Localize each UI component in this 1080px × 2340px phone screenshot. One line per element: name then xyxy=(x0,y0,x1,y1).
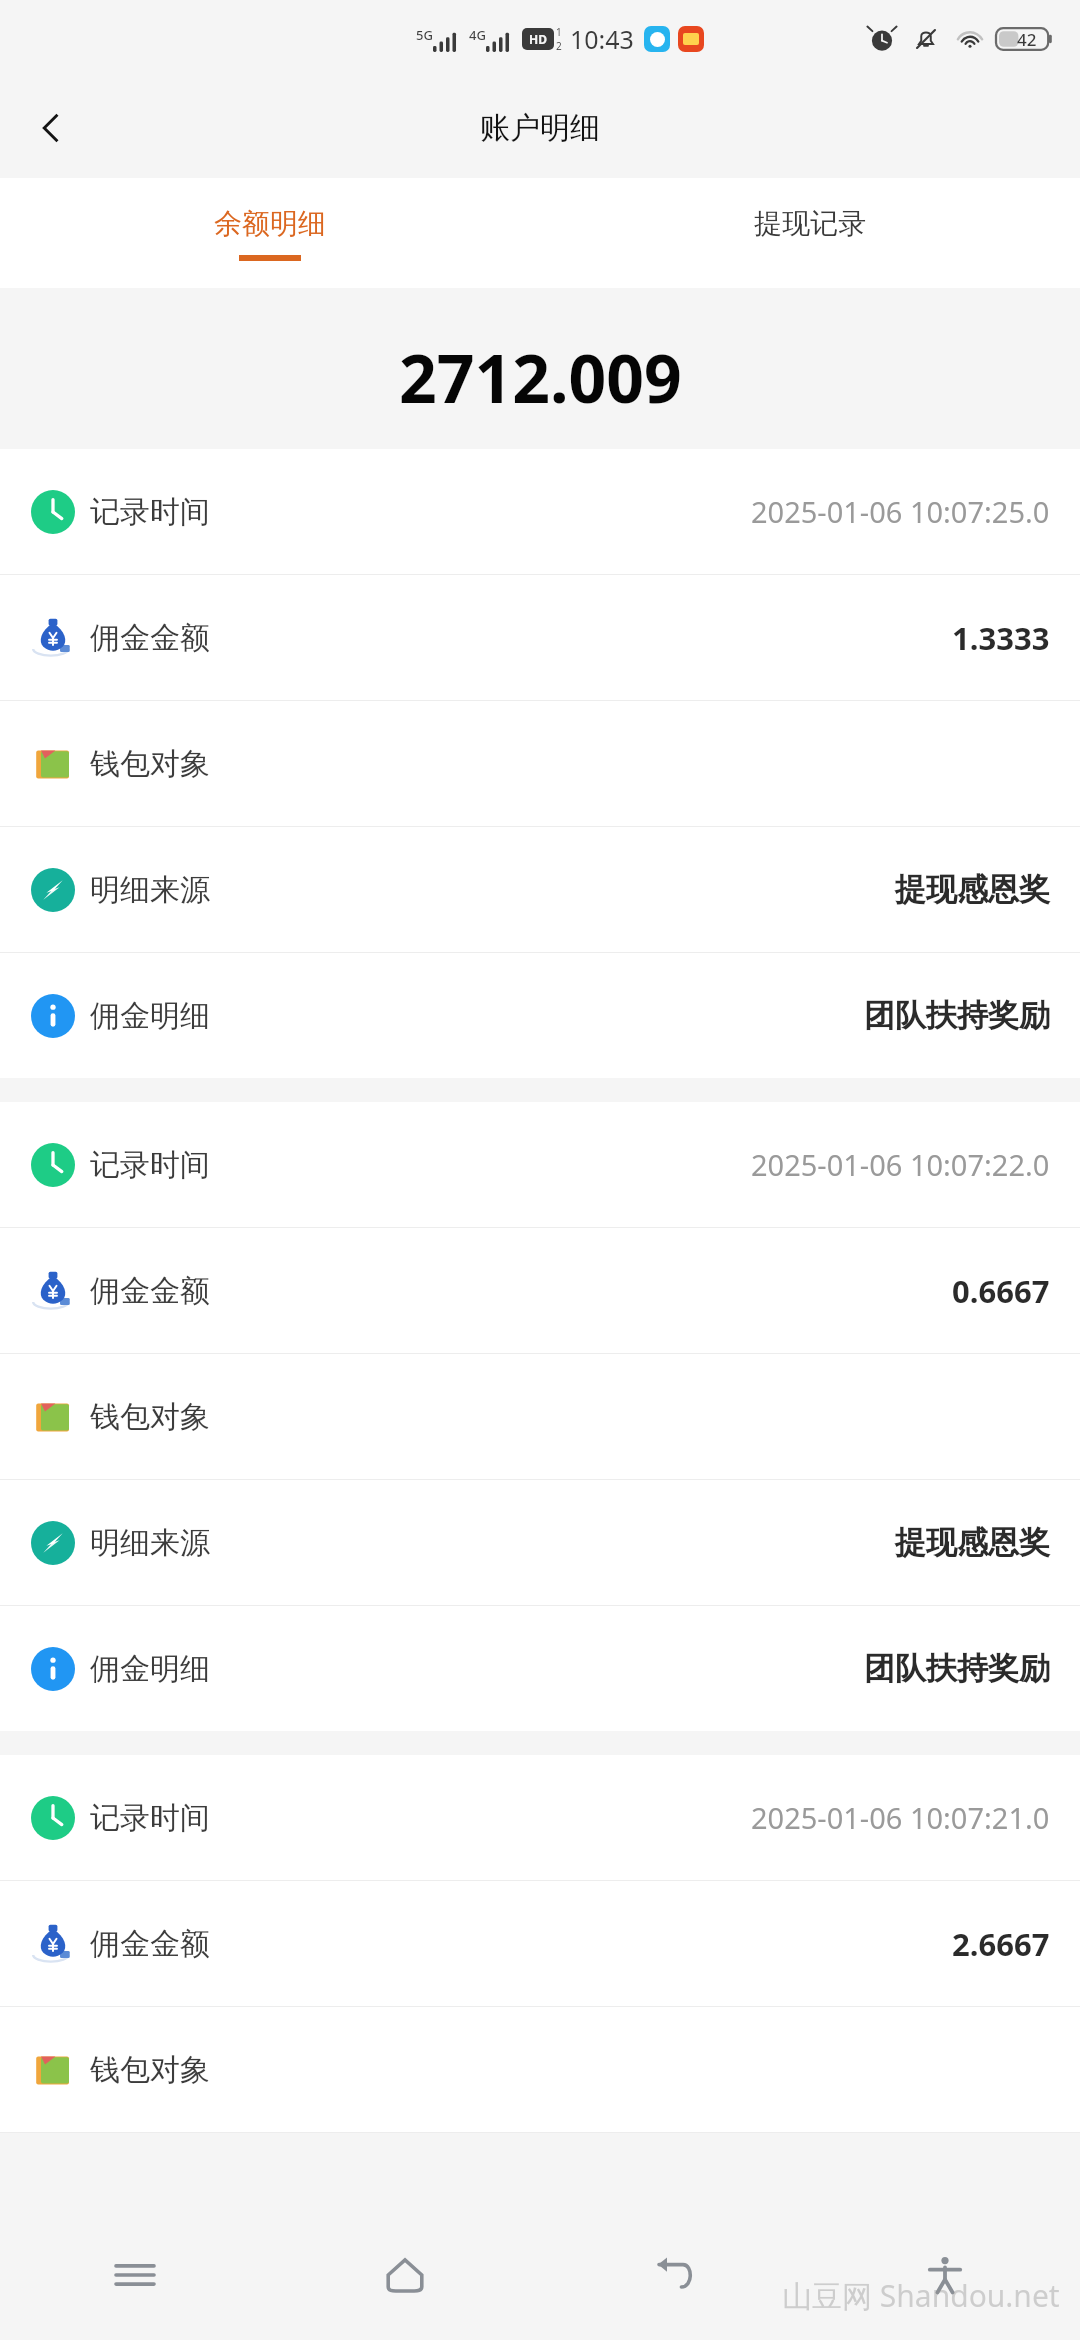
staticText: 1.3333 xyxy=(952,617,1050,659)
staticText: 提现感恩奖 xyxy=(895,1523,1050,1562)
staticText: 佣金金额 xyxy=(90,1925,210,1963)
button[interactable]: 佣金明细 xyxy=(0,953,1080,1078)
button[interactable]: Accessibility xyxy=(900,2230,990,2320)
staticText: 提现记录 xyxy=(754,206,866,241)
button[interactable]: 佣金金额 xyxy=(0,575,1080,700)
staticText: 5G xyxy=(416,26,433,44)
staticText: 2025-01-06 10:07:22.0 xyxy=(751,1145,1050,1184)
staticText: 佣金金额 xyxy=(90,1272,210,1310)
staticText: 记录时间 xyxy=(90,1799,210,1837)
staticText: 余额明细 xyxy=(214,206,326,241)
staticText: 团队扶持奖励 xyxy=(864,996,1050,1035)
staticText: 佣金明细 xyxy=(90,1650,210,1688)
staticText: 2712.009 xyxy=(399,332,682,422)
button[interactable]: 明细来源 xyxy=(0,827,1080,952)
staticText: 明细来源 xyxy=(90,1524,210,1562)
staticText: 2.6667 xyxy=(952,1923,1050,1965)
button[interactable]: Recent apps xyxy=(90,2230,180,2320)
button[interactable]: 明细来源 xyxy=(0,1480,1080,1605)
button[interactable]: 提现记录 xyxy=(540,178,1080,288)
button[interactable]: 佣金金额 xyxy=(0,1228,1080,1353)
button[interactable]: 佣金明细 xyxy=(0,1606,1080,1731)
button[interactable]: 记录时间 xyxy=(0,449,1080,574)
button[interactable]: Home xyxy=(360,2230,450,2320)
button[interactable]: 余额明细 xyxy=(0,178,540,288)
button[interactable]: 佣金金额 xyxy=(0,1881,1080,2006)
staticText: 钱包对象 xyxy=(90,1398,210,1436)
staticText: 42 xyxy=(1017,28,1037,51)
staticText: 1 xyxy=(556,25,562,39)
staticText: 山豆网 Shandou.net xyxy=(782,2275,1060,2316)
button[interactable]: 记录时间 xyxy=(0,1755,1080,1880)
button[interactable]: Back xyxy=(16,93,86,163)
staticText: 2025-01-06 10:07:25.0 xyxy=(751,492,1050,531)
staticText: 钱包对象 xyxy=(90,745,210,783)
button[interactable]: Back xyxy=(630,2230,720,2320)
staticText: HD xyxy=(529,31,547,47)
staticText: 提现感恩奖 xyxy=(895,870,1050,909)
staticText: 钱包对象 xyxy=(90,2051,210,2089)
staticText: 2025-01-06 10:07:21.0 xyxy=(751,1798,1050,1837)
staticText: 记录时间 xyxy=(90,493,210,531)
button[interactable]: 记录时间 xyxy=(0,1102,1080,1227)
staticText: 团队扶持奖励 xyxy=(864,1649,1050,1688)
staticText: 佣金金额 xyxy=(90,619,210,657)
button[interactable]: 钱包对象 xyxy=(0,1354,1080,1479)
staticText: 账户明细 xyxy=(480,109,600,147)
staticText: 2 xyxy=(556,39,562,53)
staticText: 4G xyxy=(469,26,486,44)
button[interactable]: 钱包对象 xyxy=(0,2007,1080,2132)
staticText: 10:43 xyxy=(570,22,634,56)
staticText: 记录时间 xyxy=(90,1146,210,1184)
staticText: 佣金明细 xyxy=(90,997,210,1035)
staticText: 0.6667 xyxy=(952,1270,1050,1312)
button[interactable]: 钱包对象 xyxy=(0,701,1080,826)
staticText: 明细来源 xyxy=(90,871,210,909)
